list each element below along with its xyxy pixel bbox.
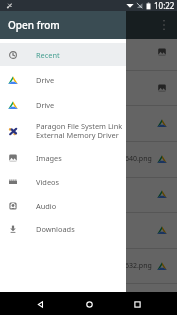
button[interactable]: Drive	[0, 92, 126, 117]
staticText: IMG_20170640.png	[88, 154, 152, 164]
button[interactable]: Home	[80, 295, 98, 313]
staticText: Drive	[36, 100, 55, 110]
button[interactable]: IMG_20170640.png	[0, 152, 177, 166]
button[interactable]: IMG_20170632.png	[0, 259, 177, 273]
button[interactable]	[0, 81, 177, 95]
staticText: 10:22	[154, 0, 175, 11]
staticText: Drive	[36, 75, 55, 85]
button[interactable]	[0, 116, 177, 130]
button[interactable]: Videos	[0, 170, 126, 194]
staticText: IMG_20170632.png	[88, 261, 152, 271]
button[interactable]: Audio	[0, 194, 126, 218]
button[interactable]	[0, 223, 177, 237]
staticText: Open from	[8, 18, 60, 32]
staticText: Images	[36, 153, 62, 163]
button[interactable]: More options	[157, 18, 171, 32]
button[interactable]: Back	[31, 295, 49, 313]
button[interactable]: Images	[0, 146, 126, 170]
button[interactable]: Downloads	[0, 217, 126, 241]
button[interactable]: Recent apps	[128, 295, 146, 313]
staticText: Paragon File System Link External Memory…	[36, 121, 123, 141]
staticText: Audio	[36, 201, 57, 211]
button[interactable]	[0, 45, 177, 59]
button[interactable]: Recent	[0, 43, 126, 66]
button[interactable]: Drive	[0, 67, 126, 92]
staticText: Recent	[36, 50, 60, 60]
button[interactable]: Paragon File System Link External Memory…	[0, 117, 126, 145]
staticText: Downloads	[36, 224, 75, 234]
staticText: Videos	[36, 177, 60, 187]
button[interactable]	[0, 187, 177, 201]
